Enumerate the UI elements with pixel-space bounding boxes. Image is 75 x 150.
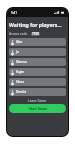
- button[interactable]: Marcus: [9, 58, 66, 66]
- button[interactable]: Alex: [9, 38, 66, 46]
- staticText: Rajan: [16, 70, 25, 74]
- staticText: Waiting for players...: [9, 22, 62, 29]
- button[interactable]: Leave Game: [26, 99, 49, 103]
- staticText: Access code: [9, 32, 28, 36]
- button[interactable]: 7F3K: [31, 32, 40, 36]
- button[interactable]: Elena: [9, 78, 66, 86]
- staticText: 9:41: [11, 11, 17, 15]
- staticText: Marcus: [16, 60, 27, 64]
- button[interactable]: Start Game: [9, 104, 66, 113]
- staticText: Dimitri: [16, 90, 27, 94]
- button[interactable]: Dimitri: [9, 88, 66, 96]
- staticText: Alex: [16, 40, 23, 44]
- staticText: Elena: [16, 80, 25, 84]
- staticText: Leave Game: [28, 99, 47, 103]
- staticText: Jo: [16, 50, 19, 54]
- button[interactable]: Rajan: [9, 68, 66, 76]
- staticText: Start Game: [29, 107, 47, 111]
- button[interactable]: Jo: [9, 48, 66, 56]
- staticText: 7F3K: [32, 32, 39, 36]
